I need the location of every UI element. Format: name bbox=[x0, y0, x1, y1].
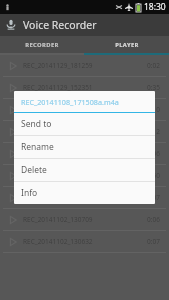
button[interactable]: REC_20141108_171426 bbox=[3, 143, 166, 164]
button[interactable]: Send to bbox=[14, 113, 155, 135]
staticText: REC_20141108_171508a bbox=[23, 105, 147, 114]
staticText: Send to bbox=[21, 118, 52, 130]
staticText: REC_20141108_171508a.m4a bbox=[21, 97, 119, 107]
staticText: PLAYER bbox=[115, 41, 139, 49]
staticText: REC_20141129_181259 bbox=[23, 61, 147, 70]
other: Voice Recorder icon bbox=[5, 19, 17, 31]
staticText: Delete bbox=[21, 164, 47, 176]
staticText: REC_20141108_171508 bbox=[23, 127, 147, 136]
staticText: 0:06 bbox=[147, 149, 160, 158]
staticText: REC_20141102_130632 bbox=[23, 237, 147, 246]
staticText: REC_20141108_171344 bbox=[23, 171, 147, 180]
button[interactable]: Rename bbox=[14, 136, 155, 158]
staticText: 18:30 bbox=[144, 1, 166, 13]
button[interactable]: Info bbox=[14, 182, 155, 204]
button[interactable]: REC_20141108_164855 bbox=[3, 187, 166, 208]
button[interactable]: REC_20141102_130632 bbox=[3, 231, 166, 252]
staticText: 0:06 bbox=[147, 215, 160, 224]
staticText: REC_20141102_130709 bbox=[23, 215, 147, 224]
staticText: REC_20141108_171426 bbox=[23, 149, 147, 158]
staticText: REC_20141108_164855 bbox=[23, 193, 147, 202]
button[interactable]: REC_20141108_171344 bbox=[3, 165, 166, 186]
staticText: 0:02 bbox=[147, 61, 160, 70]
button[interactable]: REC_20141129_181259 bbox=[3, 55, 166, 76]
staticText: Info bbox=[21, 187, 38, 199]
button[interactable]: REC_20141108_171508a bbox=[3, 99, 166, 120]
staticText: 0:07 bbox=[147, 237, 160, 246]
button[interactable]: REC_20141129_152351 bbox=[3, 77, 166, 98]
staticText: RECORDER bbox=[25, 41, 59, 49]
staticText: 0:07 bbox=[147, 193, 160, 202]
staticText: Voice Recorder bbox=[23, 18, 97, 32]
staticText: REC_20141129_152351 bbox=[23, 83, 147, 92]
staticText: Rename bbox=[21, 141, 54, 153]
staticText: 0:12 bbox=[147, 127, 160, 136]
staticText: 0:35 bbox=[147, 83, 160, 92]
button[interactable]: PLAYER bbox=[84, 36, 169, 53]
button[interactable]: REC_20141108_171508 bbox=[3, 121, 166, 142]
button[interactable]: RECORDER bbox=[0, 36, 84, 53]
button[interactable]: Delete bbox=[14, 159, 155, 181]
staticText: 0:50 bbox=[147, 171, 160, 180]
staticText: 0:10 bbox=[147, 105, 160, 114]
button[interactable]: REC_20141102_130709 bbox=[3, 209, 166, 230]
